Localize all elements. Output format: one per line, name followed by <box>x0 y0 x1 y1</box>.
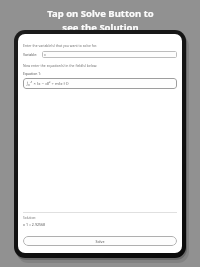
button[interactable]: Solve <box>23 236 177 246</box>
button[interactable]: x <box>42 51 177 58</box>
staticText: Solve <box>95 239 105 244</box>
staticText: Variable: <box>23 52 38 57</box>
staticText: x <box>44 52 46 57</box>
staticText: ∫₀⁻¹ × (x − d)² ÷ m(x·) () <box>26 81 69 87</box>
staticText: Equation 1: <box>23 71 42 76</box>
staticText: Enter the variable(s) that you want to s… <box>23 43 97 48</box>
staticText: Now enter the equation(s) in the field(s… <box>23 63 98 68</box>
button[interactable]: ∫₀⁻¹ × (x − d)² ÷ m(x·) () <box>23 78 177 89</box>
staticText: see the Solution <box>62 21 139 34</box>
staticText: Tap on Solve Button to <box>47 7 154 20</box>
staticText: Solution: <box>23 216 37 220</box>
staticText: x 1 = 2.92568 <box>23 222 46 227</box>
